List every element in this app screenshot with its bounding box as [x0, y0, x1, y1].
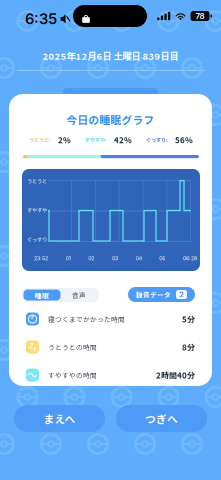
staticText: ぐっすり:	[146, 136, 168, 144]
staticText: 23:52	[34, 255, 48, 261]
button[interactable]: 録音データ	[128, 287, 195, 302]
staticText: 寝つくまでかかった時間	[48, 314, 125, 324]
staticText: うとうと	[27, 177, 47, 185]
button[interactable]: つぎへ	[116, 405, 207, 432]
staticText: 56%	[175, 134, 193, 146]
button[interactable]: 寝つくまでかかった時間	[9, 305, 212, 333]
staticText: z	[33, 345, 37, 353]
staticText: 05	[159, 255, 165, 261]
staticText: Z	[28, 341, 33, 351]
button[interactable]: 睡眠	[23, 289, 60, 300]
staticText: 04	[136, 255, 142, 261]
staticText: すやすやの時間	[48, 370, 97, 380]
button[interactable]: すやすやの時間	[9, 361, 212, 389]
staticText: まえへ	[43, 411, 75, 426]
button[interactable]: まえへ	[14, 405, 105, 432]
staticText: ぐっすり	[27, 235, 47, 243]
button[interactable]: 音声	[60, 289, 97, 300]
staticText: うとうと:	[29, 136, 51, 144]
staticText: 6:35	[25, 10, 57, 28]
staticText: 5分	[182, 313, 195, 325]
staticText: 01	[66, 255, 71, 261]
staticText: 03	[112, 255, 118, 261]
staticText: 78	[195, 11, 204, 21]
staticText: 2%	[58, 134, 71, 146]
staticText: 06:28	[183, 255, 197, 261]
staticText: 42%	[114, 134, 132, 146]
button[interactable]: Z	[9, 333, 212, 361]
staticText: 2025年12月6日 土曜日 839日目	[42, 49, 178, 62]
staticText: すやすや:	[85, 136, 107, 144]
staticText: 02	[88, 255, 94, 261]
staticText: うとうとの時間	[48, 342, 97, 352]
staticText: 2	[179, 290, 184, 299]
staticText: 今日の睡眠グラフ	[66, 112, 154, 127]
staticText: 睡眠	[35, 290, 49, 300]
staticText: 音声	[72, 290, 86, 300]
staticText: 8分	[182, 341, 195, 353]
staticText: 2時間40分	[156, 369, 195, 381]
staticText: 録音データ	[136, 290, 171, 299]
staticText: つぎへ	[145, 411, 178, 426]
staticText: すやすや	[27, 206, 47, 214]
